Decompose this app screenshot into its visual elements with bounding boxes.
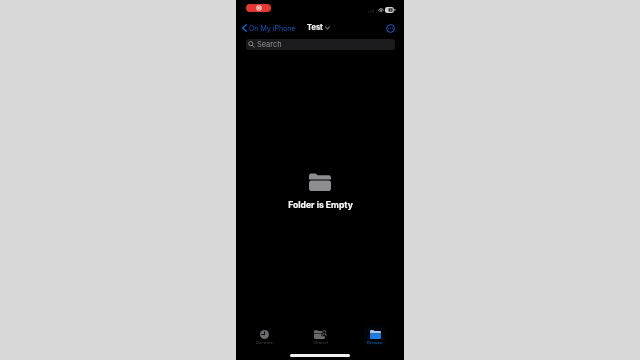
button[interactable]: Recents xyxy=(236,326,292,346)
staticText: Test xyxy=(307,23,323,32)
button[interactable]: Browse xyxy=(347,326,403,346)
staticText: Browse xyxy=(367,341,383,344)
button[interactable]: Shared xyxy=(292,326,348,346)
button[interactable]: Screen recording active xyxy=(246,4,271,12)
staticText: Folder is Empty xyxy=(288,200,353,210)
button[interactable]: Search xyxy=(246,39,395,50)
button[interactable]: More options xyxy=(382,20,398,36)
button[interactable]: On My iPhone xyxy=(241,22,297,33)
staticText: Search xyxy=(257,40,282,49)
staticText: Shared xyxy=(313,341,328,344)
staticText: On My iPhone xyxy=(249,24,296,32)
staticText: Recents xyxy=(256,341,273,344)
